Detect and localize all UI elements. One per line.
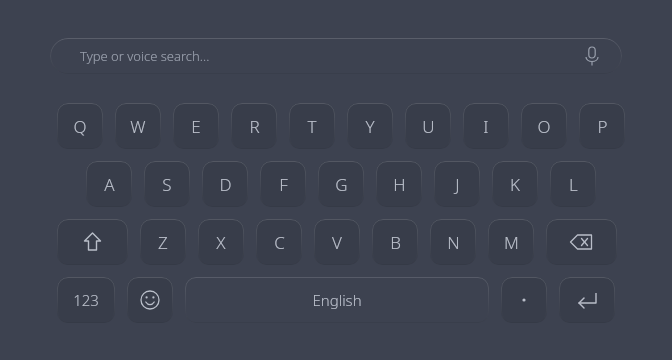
- button[interactable]: Type or voice search...: [50, 38, 622, 74]
- staticText: A: [104, 173, 115, 196]
- button[interactable]: N: [430, 219, 476, 265]
- button[interactable]: I: [463, 103, 509, 149]
- button[interactable]: Enter: [559, 277, 615, 323]
- button[interactable]: S: [144, 161, 190, 207]
- button[interactable]: V: [314, 219, 360, 265]
- button[interactable]: Backspace: [546, 219, 617, 265]
- staticText: Y: [365, 115, 375, 138]
- staticText: N: [447, 231, 460, 254]
- staticText: I: [483, 115, 489, 138]
- button[interactable]: D: [202, 161, 248, 207]
- staticText: Q: [73, 115, 87, 138]
- button[interactable]: T: [289, 103, 335, 149]
- button[interactable]: B: [372, 219, 418, 265]
- button[interactable]: English: [185, 277, 489, 323]
- staticText: B: [390, 231, 401, 254]
- button[interactable]: A: [86, 161, 132, 207]
- button[interactable]: F: [260, 161, 306, 207]
- button[interactable]: 123: [57, 277, 115, 323]
- staticText: M: [504, 231, 519, 254]
- staticText: Type or voice search...: [80, 47, 210, 65]
- staticText: S: [162, 173, 172, 196]
- button[interactable]: J: [434, 161, 480, 207]
- button[interactable]: Q: [57, 103, 103, 149]
- button[interactable]: Emoji: [127, 277, 173, 323]
- staticText: J: [455, 173, 460, 196]
- button[interactable]: U: [405, 103, 451, 149]
- button[interactable]: Z: [140, 219, 186, 265]
- button[interactable]: P: [579, 103, 625, 149]
- staticText: Z: [158, 231, 168, 254]
- button[interactable]: X: [198, 219, 244, 265]
- staticText: D: [219, 173, 232, 196]
- staticText: H: [393, 173, 406, 196]
- button[interactable]: E: [173, 103, 219, 149]
- staticText: W: [130, 115, 146, 138]
- button[interactable]: K: [492, 161, 538, 207]
- button[interactable]: Y: [347, 103, 393, 149]
- staticText: X: [216, 231, 226, 254]
- button[interactable]: C: [256, 219, 302, 265]
- staticText: U: [422, 115, 435, 138]
- staticText: G: [335, 173, 348, 196]
- button[interactable]: M: [488, 219, 534, 265]
- button[interactable]: G: [318, 161, 364, 207]
- staticText: F: [279, 173, 288, 196]
- staticText: R: [249, 115, 260, 138]
- staticText: L: [569, 173, 578, 196]
- staticText: T: [307, 115, 317, 138]
- staticText: O: [537, 115, 551, 138]
- staticText: English: [312, 290, 362, 310]
- button[interactable]: R: [231, 103, 277, 149]
- staticText: P: [597, 115, 608, 138]
- button[interactable]: Period: [501, 277, 547, 323]
- button[interactable]: O: [521, 103, 567, 149]
- staticText: 123: [73, 290, 99, 310]
- button[interactable]: Shift: [57, 219, 128, 265]
- button[interactable]: H: [376, 161, 422, 207]
- staticText: E: [191, 115, 201, 138]
- button[interactable]: L: [550, 161, 596, 207]
- staticText: V: [332, 231, 342, 254]
- staticText: C: [274, 231, 285, 254]
- button[interactable]: Voice search: [580, 44, 604, 68]
- staticText: K: [510, 173, 520, 196]
- button[interactable]: W: [115, 103, 161, 149]
